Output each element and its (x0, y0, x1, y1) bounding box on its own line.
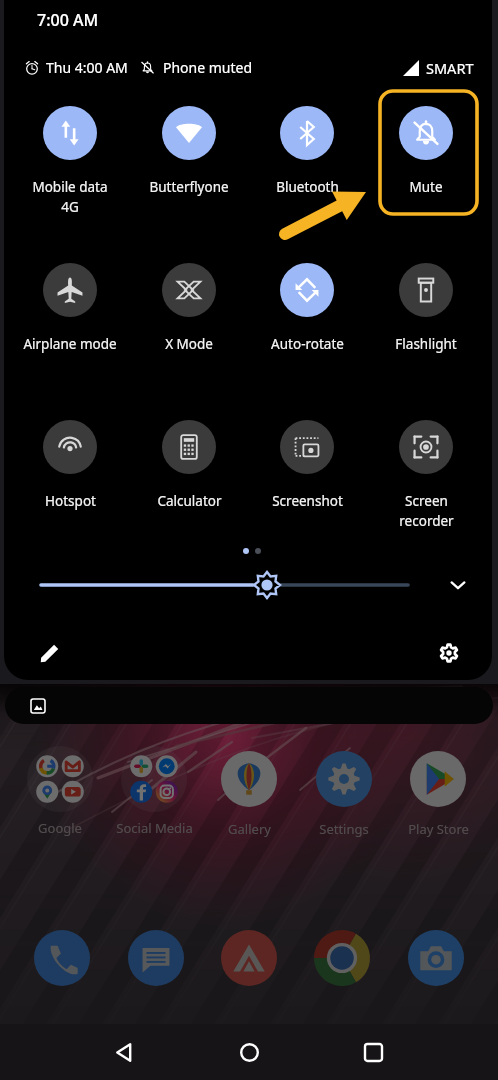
button[interactable]: Screenshot (255, 420, 359, 577)
button[interactable]: Bluetooth (255, 106, 359, 263)
staticText: 7:00 AM (37, 9, 99, 31)
button[interactable] (5, 687, 493, 724)
button[interactable]: Settings (430, 634, 468, 672)
button[interactable]: Brightness (4, 570, 492, 600)
button[interactable]: Camera (396, 918, 476, 998)
staticText: Google (38, 819, 82, 837)
button[interactable]: Apus (209, 918, 289, 998)
staticText: Flashlight (395, 335, 457, 353)
button[interactable]: Settings (300, 746, 388, 838)
staticText: Screenshot (272, 492, 343, 510)
button[interactable]: Social Media (110, 746, 198, 837)
staticText: Gallery (228, 820, 271, 838)
staticText: Settings (319, 820, 369, 838)
button[interactable]: Screen recorder (374, 420, 478, 577)
button[interactable]: Messages (116, 918, 196, 998)
staticText: Bluetooth (276, 178, 339, 196)
button[interactable]: Expand (441, 570, 475, 600)
button[interactable]: X Mode (137, 263, 241, 420)
button[interactable]: Mobile data 4G (18, 106, 122, 263)
staticText: Airplane mode (23, 335, 117, 353)
button[interactable]: Hotspot (18, 420, 122, 577)
staticText: Phone muted (163, 58, 253, 77)
staticText: Butterflyone (149, 178, 229, 196)
staticText: Play Store (408, 820, 469, 838)
button[interactable]: Flashlight (374, 263, 478, 420)
staticText: Calculator (157, 492, 222, 510)
button[interactable]: Home (225, 1028, 273, 1076)
staticText: Hotspot (45, 492, 96, 510)
staticText: Screen recorder (399, 492, 454, 530)
button[interactable]: Recents (349, 1028, 397, 1076)
staticText: Mobile data 4G (32, 178, 108, 216)
button[interactable]: Back (100, 1028, 148, 1076)
staticText: SMART (426, 58, 474, 78)
button[interactable]: Calculator (137, 420, 241, 577)
button[interactable]: Auto-rotate (255, 263, 359, 420)
staticText: X Mode (165, 335, 213, 353)
button[interactable]: Edit (30, 634, 68, 672)
staticText: Social Media (116, 819, 193, 837)
button[interactable]: Phone (22, 918, 102, 998)
button[interactable]: Mute (374, 106, 478, 263)
staticText: Mute (409, 178, 443, 196)
button[interactable]: Butterflyone (137, 106, 241, 263)
staticText: Thu 4:00 AM (46, 58, 128, 77)
button[interactable]: Google (16, 746, 104, 837)
button[interactable]: Play Store (394, 746, 482, 838)
button[interactable]: Chrome (302, 918, 382, 998)
staticText: Auto-rotate (271, 335, 344, 353)
button[interactable]: Airplane mode (18, 263, 122, 420)
button[interactable]: Gallery (205, 746, 293, 838)
